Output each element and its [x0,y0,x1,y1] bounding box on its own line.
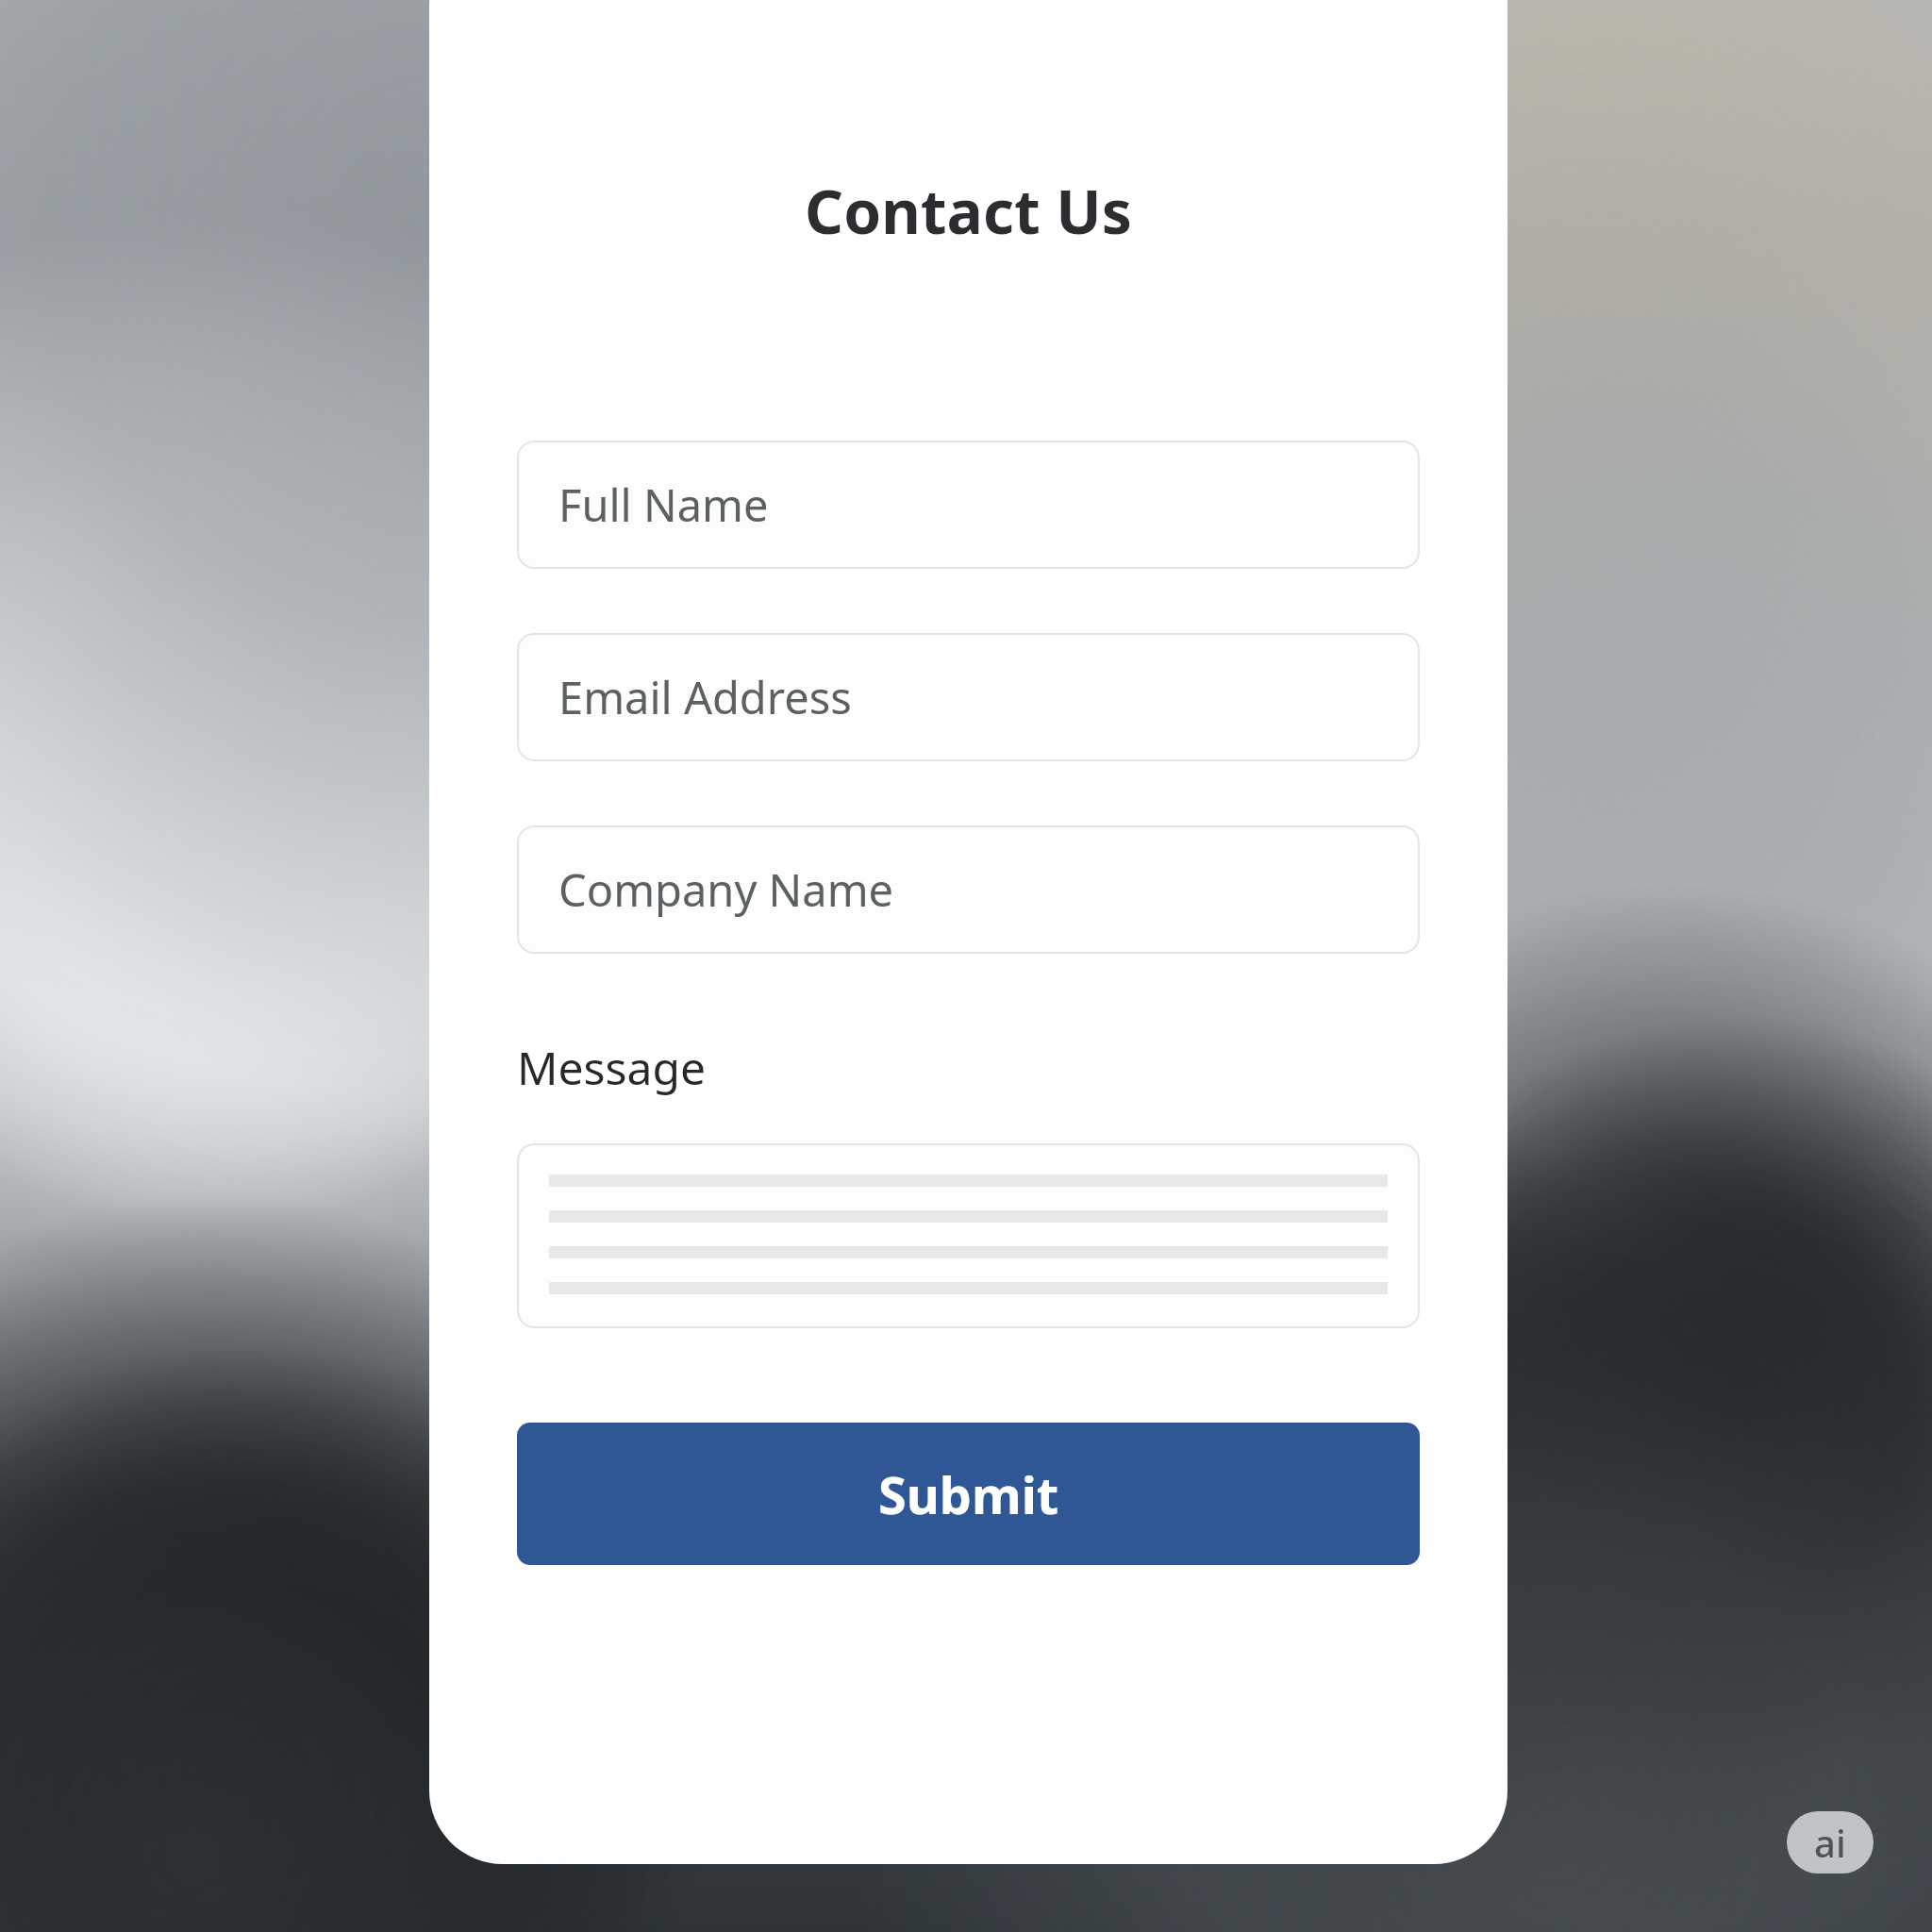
staticText: Message [517,1037,707,1098]
button[interactable]: Submit [517,1423,1420,1565]
staticText: Submit [878,1459,1059,1529]
button[interactable]: Full Name [517,441,1420,569]
button[interactable]: AI badge [1787,1811,1874,1874]
staticText: Full Name [558,475,769,535]
button[interactable]: Email Address [517,633,1420,761]
staticText: Contact Us [429,170,1507,252]
staticText: Company Name [558,859,894,920]
button[interactable]: Company Name [517,825,1420,954]
staticText: ai [1814,1817,1846,1868]
button[interactable]: Message text area [517,1143,1420,1328]
staticText: Email Address [558,667,852,727]
